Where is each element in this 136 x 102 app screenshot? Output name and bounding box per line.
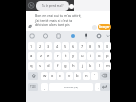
button[interactable]: 9: [96, 42, 103, 50]
button[interactable]: a: [28, 52, 35, 60]
button[interactable]: r: [54, 52, 61, 60]
button[interactable]: ?123: [28, 83, 38, 91]
button[interactable]: 0: [104, 42, 111, 50]
staticText: c: [59, 73, 62, 79]
button[interactable]: Tu le prend mal ?: [36, 1, 69, 11]
staticText: 7: [81, 44, 84, 49]
button[interactable]: 7: [79, 42, 86, 50]
button[interactable]: j: [79, 62, 86, 70]
button[interactable]: k: [87, 62, 94, 70]
staticText: q: [30, 63, 33, 69]
button[interactable]: q: [28, 62, 35, 70]
staticText: r: [57, 53, 59, 59]
button[interactable]: c: [57, 72, 64, 80]
button[interactable]: 3: [45, 42, 52, 50]
staticText: j'ai tenté mais si c'est ta: [35, 18, 73, 23]
button[interactable]: [28, 72, 38, 80]
button[interactable]: y: [70, 52, 77, 60]
button[interactable]: [100, 72, 110, 80]
staticText: u: [81, 53, 84, 59]
button[interactable]: i: [87, 52, 94, 60]
staticText: Français (FR): [64, 85, 79, 88]
button[interactable]: [100, 83, 110, 91]
button[interactable]: ': [91, 72, 98, 80]
button[interactable]: g: [62, 62, 69, 70]
staticText: ,: [44, 85, 45, 90]
button[interactable]: v: [66, 72, 73, 80]
button[interactable]: .: [95, 83, 101, 91]
staticText: décision alors tant pis: [35, 22, 70, 27]
button[interactable]: e: [45, 52, 52, 60]
staticText: 6: [72, 44, 75, 49]
staticText: 0: [106, 44, 109, 49]
button[interactable]: h: [70, 62, 77, 70]
button[interactable]: 1: [28, 42, 35, 50]
button[interactable]: w: [41, 72, 48, 80]
staticText: s: [39, 63, 42, 69]
staticText: e: [47, 53, 50, 59]
staticText: .: [98, 85, 99, 90]
staticText: t: [65, 53, 67, 59]
button[interactable]: [92, 25, 97, 30]
button[interactable]: o: [96, 52, 103, 60]
staticText: n: [85, 73, 88, 79]
staticText: a: [30, 53, 33, 59]
button[interactable]: b: [74, 72, 81, 80]
staticText: v: [68, 73, 71, 79]
button[interactable]: f: [54, 62, 61, 70]
staticText: 4: [56, 44, 59, 49]
button[interactable]: l: [96, 62, 103, 70]
button[interactable]: t: [62, 52, 69, 60]
staticText: Bon en vrai oui tu m'as attiré,: [35, 13, 82, 18]
staticText: 1: [30, 44, 33, 49]
staticText: g: [64, 63, 67, 69]
staticText: h: [72, 63, 75, 69]
button[interactable]: x: [49, 72, 56, 80]
staticText: 9: [98, 44, 101, 49]
staticText: 5: [64, 44, 67, 49]
button[interactable]: ,: [41, 83, 48, 91]
staticText: l: [99, 63, 101, 69]
staticText: i: [90, 53, 92, 59]
staticText: Tu le prend mal ?: [42, 4, 64, 8]
button[interactable]: 8: [87, 42, 94, 50]
button[interactable]: s: [37, 62, 44, 70]
staticText: f: [57, 63, 59, 69]
staticText: ?123: [30, 85, 36, 89]
button[interactable]: 4: [54, 42, 61, 50]
button[interactable]: m: [104, 62, 111, 70]
staticText: 3: [47, 44, 50, 49]
staticText: 2: [39, 44, 42, 49]
button[interactable]: z: [37, 52, 44, 60]
staticText: k: [89, 63, 92, 69]
staticText: ': [94, 73, 95, 79]
button[interactable]: n: [83, 72, 90, 80]
staticText: p: [106, 53, 109, 59]
button[interactable]: 2: [37, 42, 44, 50]
staticText: b: [76, 73, 79, 79]
staticText: Envoyer: [99, 25, 110, 29]
button[interactable]: 6: [70, 42, 77, 50]
button[interactable]: d: [45, 62, 52, 70]
staticText: o: [98, 53, 101, 59]
button[interactable]: p: [104, 52, 111, 60]
button[interactable]: [49, 83, 93, 91]
staticText: d: [47, 63, 50, 69]
staticText: 8: [89, 44, 92, 49]
staticText: j: [82, 63, 84, 69]
staticText: x: [51, 73, 54, 79]
button[interactable]: 5: [62, 42, 69, 50]
staticText: w: [43, 73, 47, 79]
staticText: z: [40, 53, 42, 59]
staticText: y: [72, 53, 75, 59]
staticText: m: [106, 63, 110, 69]
button[interactable]: u: [79, 52, 86, 60]
button[interactable]: Envoyer: [98, 24, 111, 30]
